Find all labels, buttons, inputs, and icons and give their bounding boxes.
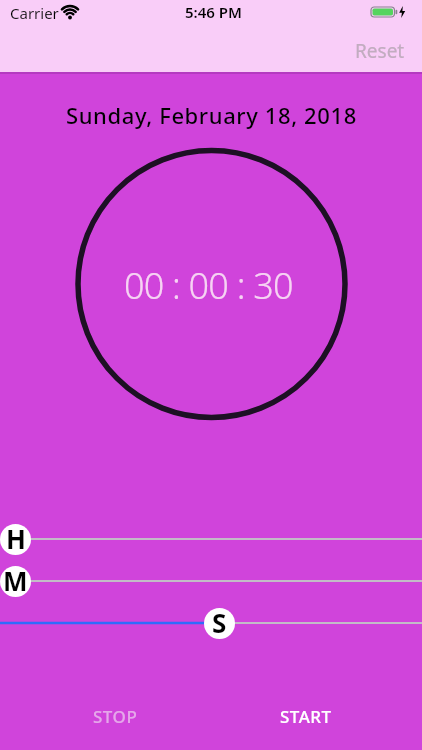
staticText: S (212, 608, 227, 636)
button[interactable]: START (261, 700, 351, 732)
button[interactable]: STOP (70, 700, 160, 732)
staticText: H (6, 524, 26, 552)
staticText: M (3, 566, 28, 594)
button[interactable]: Reset (355, 38, 405, 64)
button[interactable]: S (204, 608, 235, 639)
staticText: Reset (355, 38, 405, 64)
button[interactable]: H (0, 524, 31, 555)
staticText: 00 : 00 : 30 (124, 261, 293, 310)
staticText: Carrier (10, 3, 59, 23)
staticText: Sunday, February 18, 2018 (66, 100, 357, 130)
staticText: START (280, 705, 332, 728)
staticText: 5:46 PM (185, 2, 242, 22)
button[interactable]: M (0, 566, 31, 597)
staticText: STOP (93, 705, 138, 728)
